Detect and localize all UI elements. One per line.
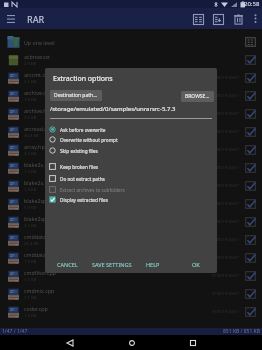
button[interactable]: blake2s.cpp (0, 159, 262, 177)
staticText: HELP (146, 261, 160, 268)
staticText: 9/18/19 00:07 (212, 237, 239, 243)
staticText: 9/18/19 00:07 (212, 201, 239, 207)
staticText: 9/18/19 00:07 (212, 129, 239, 135)
button[interactable]: blake2sp.hpp (0, 213, 262, 231)
staticText: cmddata.hpp (24, 251, 58, 258)
button[interactable]: Recent apps (185, 335, 200, 350)
staticText: SAVE SETTINGS (92, 261, 132, 268)
staticText: 1.4 KB (24, 187, 37, 193)
staticText: 9/18/19 00:07 (212, 183, 239, 189)
button[interactable]: archive.cpp (0, 87, 262, 105)
staticText: cmdmix.cpp (24, 287, 55, 294)
staticText: 2.1 KB (24, 79, 37, 85)
staticText: coder.cpp (24, 305, 48, 312)
button[interactable]: Ask before overwrite (49, 124, 213, 135)
staticText: blake2sp.cpp (24, 197, 57, 204)
staticText: 7.8 KB (24, 97, 37, 103)
staticText: 1.9 KB (24, 259, 37, 265)
button[interactable]: Destination path... (50, 90, 102, 101)
staticText: acbrow.txt (24, 53, 50, 60)
button[interactable]: array.hpp (0, 141, 262, 159)
staticText: /storage/emulated/0/samples/unrarsrc-5.7… (50, 105, 176, 113)
staticText: Extract archives to subfolders (60, 187, 125, 193)
button[interactable]: Up one level (0, 33, 262, 51)
staticText: CANCEL (57, 261, 78, 268)
button[interactable]: Back (62, 335, 77, 350)
staticText: 3.6 KB (24, 115, 37, 121)
staticText: 1/47 / 1/47 (2, 328, 28, 335)
button[interactable]: archive.hpp (0, 105, 262, 123)
button[interactable]: Delete (228, 9, 248, 29)
button[interactable]: cmddata.cpp (0, 231, 262, 249)
staticText: 7.4 KB (24, 169, 37, 175)
button[interactable]: Display extracted files (49, 194, 213, 205)
button[interactable]: SAVE SETTINGS (89, 258, 135, 271)
staticText: 5.9 KB (24, 205, 37, 211)
staticText: 46.3 KB (24, 133, 39, 139)
button[interactable]: Extract archives to subfolders (49, 184, 213, 195)
button[interactable]: Open navigation drawer (0, 8, 21, 29)
staticText: blake2s.cpp (24, 161, 54, 168)
staticText: BROWSE... (185, 93, 210, 100)
staticText: blake2s.hpp (24, 179, 55, 186)
button[interactable]: Keep broken files (49, 161, 213, 172)
button[interactable]: HELP (143, 258, 163, 271)
staticText: 9/18/19 00:07 (212, 291, 239, 297)
button[interactable]: blake2s.hpp (0, 177, 262, 195)
button[interactable]: Overwrite without prompt (49, 134, 213, 145)
staticText: 9/18/19 00:07 (212, 147, 239, 153)
staticText: arccmt.cpp (24, 71, 52, 78)
button[interactable]: CANCEL (54, 258, 81, 271)
staticText: 9/18/19 00:07 (212, 93, 239, 99)
staticText: 20:58 (244, 0, 260, 8)
staticText: archive.hpp (24, 107, 54, 114)
staticText: Overwrite without prompt (60, 137, 118, 143)
staticText: cmdfilter.cpp (24, 269, 57, 276)
button[interactable]: cmdfilter.cpp (0, 267, 262, 285)
staticText: 3.9 KB (24, 151, 37, 157)
staticText: 9/18/19 00:07 (212, 255, 239, 261)
staticText: archive.cpp (24, 89, 53, 96)
staticText: 9/18/19 00:07 (212, 111, 239, 117)
staticText: 9/18/19 00:07 (212, 165, 239, 171)
staticText: Skip existing files (60, 148, 98, 154)
button[interactable]: BROWSE... (181, 91, 214, 102)
button[interactable]: cmdmix.cpp (0, 285, 262, 303)
button[interactable]: blake2sp.cpp (0, 195, 262, 213)
staticText: 26.4 KB (24, 241, 39, 247)
button[interactable]: Skip existing files (49, 145, 213, 156)
button[interactable]: cmddata.hpp (0, 249, 262, 267)
staticText: Up one level (24, 39, 55, 46)
staticText: cmddata.cpp (24, 233, 57, 240)
button[interactable]: More options (248, 8, 262, 29)
button[interactable]: Add to archive (188, 9, 208, 29)
staticText: Display extracted files (60, 197, 109, 203)
staticText: arcread.cpp (24, 125, 54, 132)
button[interactable]: Extract (208, 9, 228, 29)
staticText: 2.2 KB (24, 223, 37, 229)
button[interactable]: arcread.cpp (0, 123, 262, 141)
button[interactable]: coder.cpp (0, 303, 262, 321)
button[interactable]: OK (189, 258, 203, 271)
button[interactable]: Home (124, 335, 139, 350)
staticText: Extraction options (53, 74, 113, 84)
staticText: 9/18/19 00:07 (212, 309, 239, 315)
staticText: 9/18/19 00:07 (212, 219, 239, 225)
staticText: array.hpp (24, 143, 48, 150)
staticText: 851 KB / 851 KB (223, 328, 260, 335)
staticText: Do not extract paths (60, 176, 105, 182)
staticText: 2.9 KB (24, 61, 37, 67)
button[interactable]: arccmt.cpp (0, 69, 262, 87)
staticText: 3.1 KB (24, 277, 37, 283)
staticText: blake2sp.hpp (24, 215, 58, 222)
staticText: Destination path... (54, 92, 98, 99)
button[interactable]: Do not extract paths (49, 173, 213, 184)
staticText: OK (192, 261, 200, 268)
button[interactable]: acbrow.txt (0, 51, 262, 69)
staticText: 9/18/19 00:07 (212, 273, 239, 279)
staticText: 9/18/19 00:07 (212, 75, 239, 81)
staticText: RAR (27, 13, 45, 25)
staticText: Ask before overwrite (60, 127, 106, 133)
staticText: 1.2 KB (24, 313, 37, 319)
staticText: 1.1 KB (24, 295, 37, 301)
